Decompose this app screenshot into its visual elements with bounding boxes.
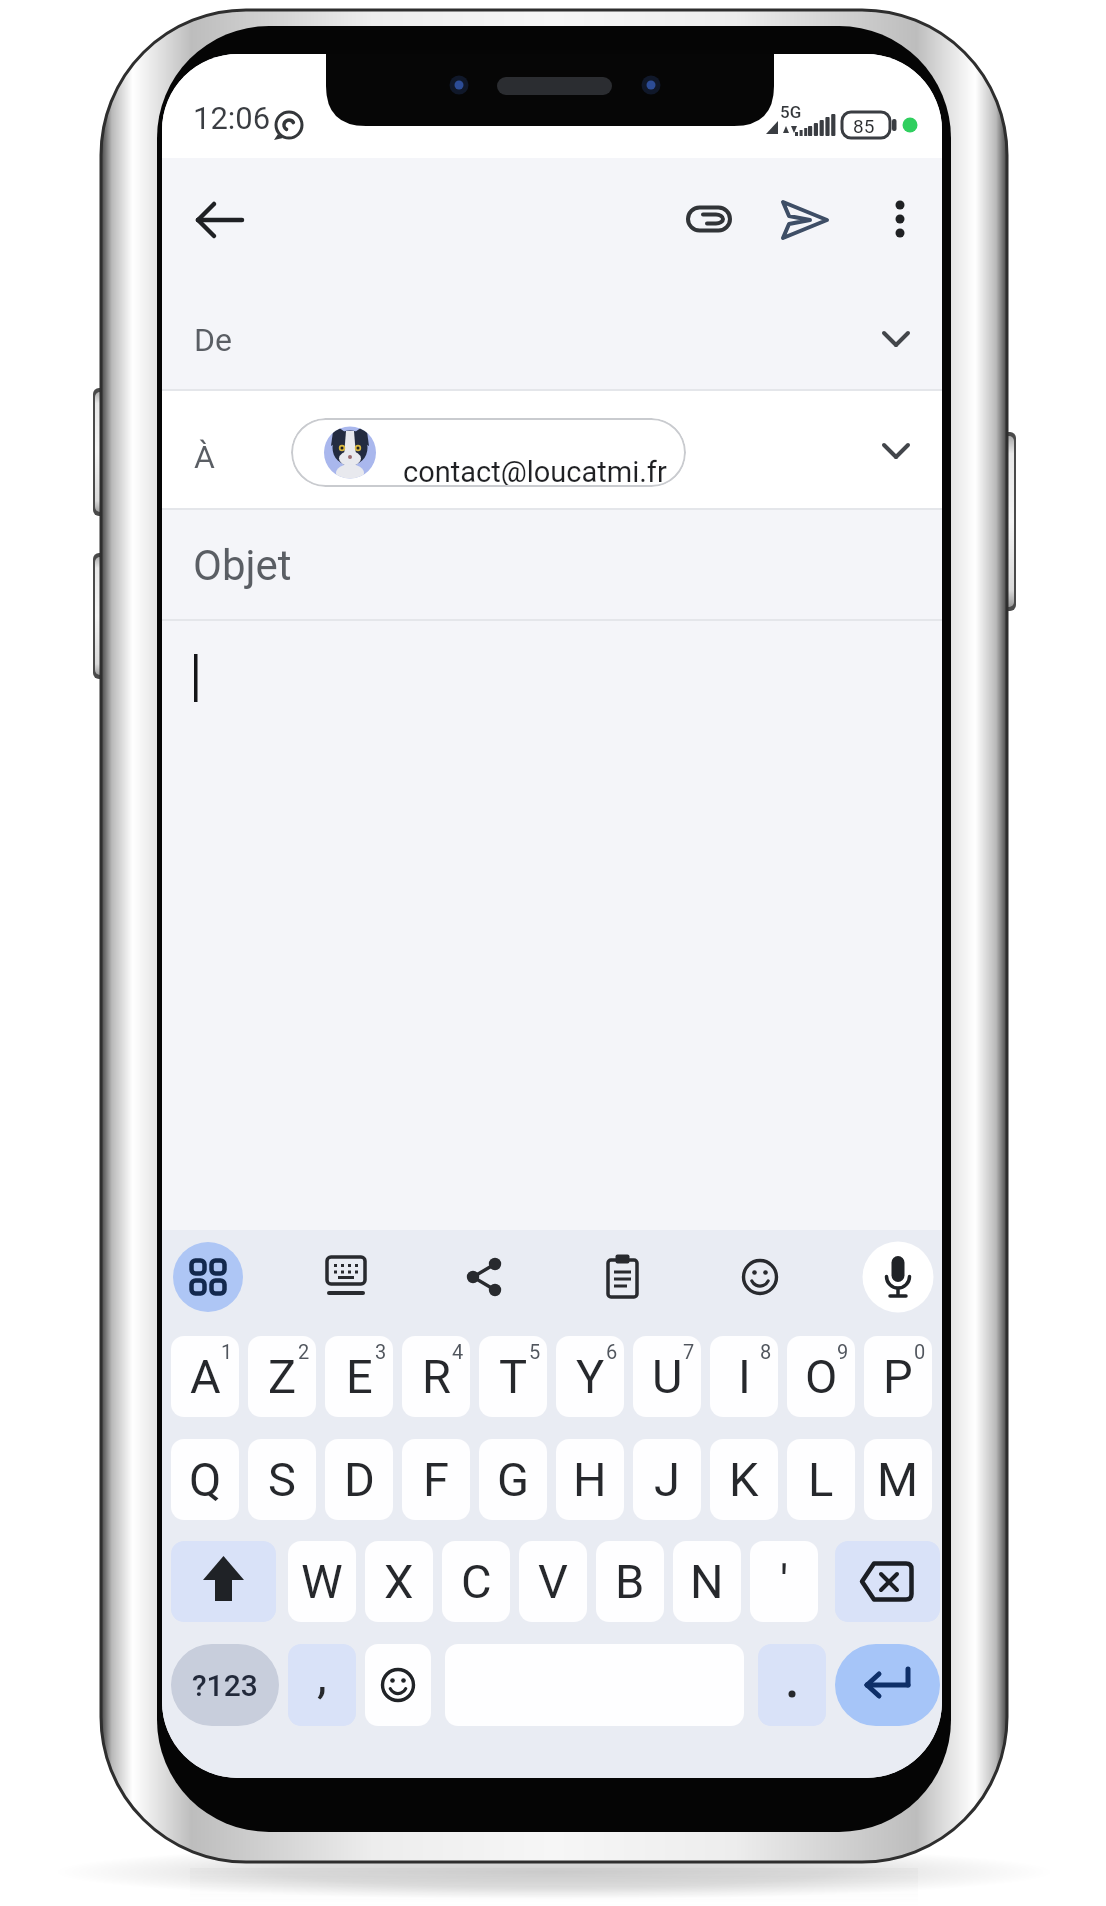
button[interactable] [681,192,737,248]
button[interactable]: G [479,1439,547,1520]
staticText: P [883,1349,913,1404]
staticText: C [461,1554,492,1609]
staticText: 5 [529,1340,541,1363]
staticText: 5G [780,102,802,122]
button[interactable] [835,1644,940,1726]
staticText: Z [268,1349,297,1404]
staticText: M [877,1452,919,1507]
staticText: 3 [375,1340,387,1363]
staticText: D [344,1452,375,1507]
button[interactable]: K [710,1439,778,1520]
button[interactable]: Z [248,1336,316,1417]
staticText: S [268,1452,296,1507]
staticText: , [317,1646,327,1705]
staticText: 7 [683,1340,695,1363]
button[interactable]: F [402,1439,470,1520]
staticText: F [423,1452,449,1507]
button[interactable]: ' [750,1541,818,1622]
staticText: 2 [298,1340,310,1363]
button[interactable] [310,1241,382,1313]
staticText: W [301,1554,343,1609]
button[interactable]: H [556,1439,624,1520]
button[interactable]: W [288,1541,356,1622]
button[interactable] [182,194,238,250]
staticText: R [422,1349,451,1404]
button[interactable]: Q [171,1439,239,1520]
button[interactable] [862,312,930,368]
staticText: 8 [760,1340,772,1363]
button[interactable] [171,1541,276,1622]
button[interactable]: J [633,1439,701,1520]
button[interactable]: X [365,1541,433,1622]
staticText: 1 [221,1340,233,1363]
button[interactable] [862,1241,934,1313]
button[interactable] [872,192,928,248]
button[interactable]: T [479,1336,547,1417]
button[interactable] [758,1644,826,1726]
button[interactable]: P [864,1336,932,1417]
button[interactable]: B [596,1541,664,1622]
button[interactable]: O [787,1336,855,1417]
button[interactable]: contact@loucatmi.fr [291,418,686,487]
button[interactable] [448,1241,520,1313]
button[interactable]: C [442,1541,510,1622]
staticText: Q [189,1452,222,1507]
button[interactable]: A [171,1336,239,1417]
staticText: B [615,1554,645,1609]
staticText: U [652,1349,683,1404]
staticText: 12:06 [193,100,271,136]
button[interactable]: N [673,1541,741,1622]
button[interactable] [586,1241,658,1313]
staticText: V [538,1554,568,1609]
button[interactable] [862,424,930,480]
staticText: contact@loucatmi.fr [403,455,667,487]
staticText: E [346,1349,373,1404]
button[interactable]: Y [556,1336,624,1417]
button[interactable]: ?123 [171,1644,279,1726]
button[interactable]: , [288,1644,356,1726]
button[interactable]: I [710,1336,778,1417]
staticText: 6 [606,1340,618,1363]
staticText: 85 [853,115,875,137]
staticText: N [690,1554,724,1609]
button[interactable] [724,1241,796,1313]
staticText: Objet [193,541,292,590]
staticText: A [190,1349,221,1404]
button[interactable]: V [519,1541,587,1622]
staticText: De [194,321,232,359]
staticText: 0 [914,1340,926,1363]
button[interactable]: S [248,1439,316,1520]
staticText: I [738,1349,751,1404]
staticText: X [384,1554,414,1609]
button[interactable] [835,1541,940,1622]
button[interactable]: R [402,1336,470,1417]
staticText: O [805,1349,838,1404]
button[interactable] [777,192,833,248]
button[interactable] [365,1644,431,1726]
staticText: 9 [837,1340,849,1363]
staticText: L [808,1452,834,1507]
button[interactable]: D [325,1439,393,1520]
staticText: Y [576,1349,605,1404]
staticText: ' [780,1554,789,1609]
staticText: G [497,1452,530,1507]
button[interactable]: M [864,1439,932,1520]
staticText: J [654,1452,680,1507]
button[interactable]: U [633,1336,701,1417]
staticText: T [499,1349,528,1404]
staticText: 4 [452,1340,464,1363]
staticText: ?123 [192,1668,258,1703]
staticText: H [573,1452,607,1507]
staticText: À [194,438,215,476]
staticText: K [729,1452,759,1507]
button[interactable] [162,390,942,509]
button[interactable]: E [325,1336,393,1417]
button[interactable] [172,1241,244,1313]
button[interactable]: L [787,1439,855,1520]
